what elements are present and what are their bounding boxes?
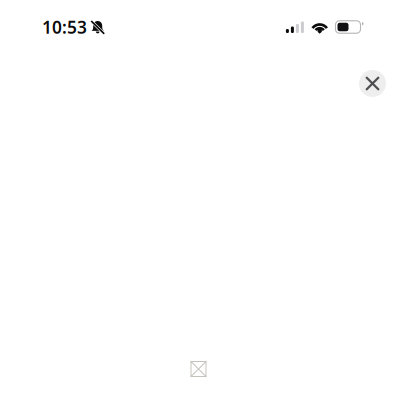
image (190, 361, 206, 377)
staticText: 10:53 (42, 15, 87, 38)
button[interactable]: Close (356, 67, 389, 100)
